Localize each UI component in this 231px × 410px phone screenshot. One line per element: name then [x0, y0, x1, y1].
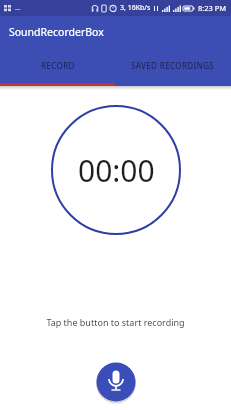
button[interactable]: RECORD — [0, 48, 115, 86]
staticText: RECORD — [41, 60, 75, 71]
button[interactable] — [96, 362, 136, 402]
staticText: SAVED RECORDINGS — [131, 60, 215, 71]
staticText: ... — [15, 3, 21, 13]
staticText: 8:23 PM — [198, 3, 227, 13]
staticText: Tap the button to start recording — [46, 316, 185, 328]
staticText: 3, 16Kb/s — [120, 3, 151, 13]
button[interactable]: SAVED RECORDINGS — [115, 48, 231, 86]
staticText: SoundRecorderBox — [9, 25, 104, 39]
staticText: 00:00 — [78, 150, 155, 191]
